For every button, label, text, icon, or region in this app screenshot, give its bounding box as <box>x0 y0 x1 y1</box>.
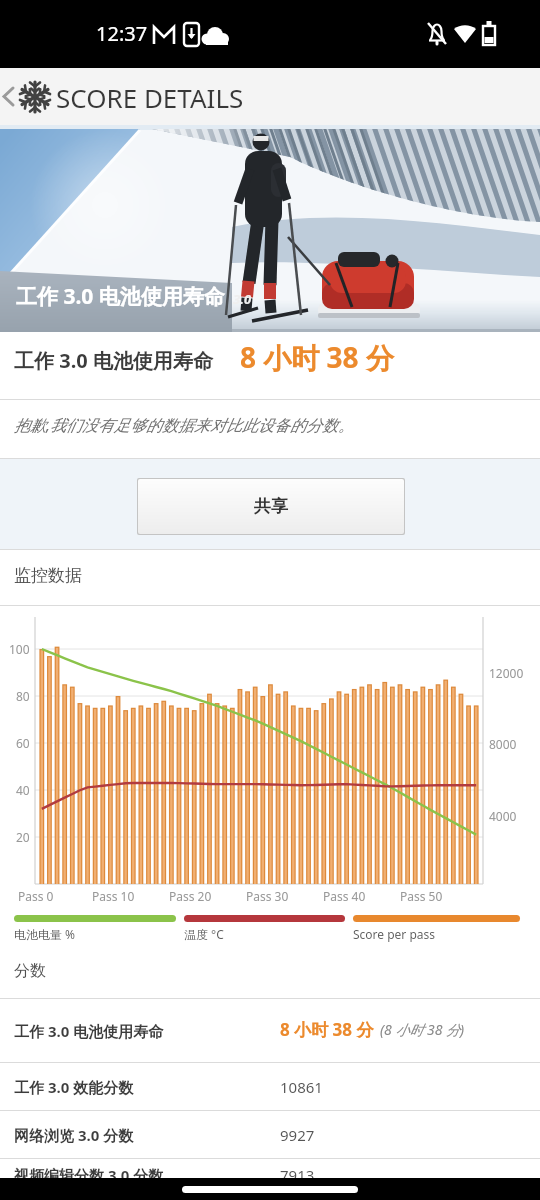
staticText: 100 <box>9 641 30 657</box>
staticText: Pass 50 <box>400 888 443 904</box>
button[interactable]: 视频编辑分数 3.0 分数 <box>0 1159 540 1200</box>
staticText: 监控数据 <box>14 565 82 586</box>
staticText: SCORE DETAILS <box>56 80 244 115</box>
staticText: 抱歉,我们没有足够的数据来对比此设备的分数。 <box>14 414 355 436</box>
button[interactable]: 网络浏览 3.0 分数 <box>0 1111 540 1158</box>
staticText: 8 小时 38 分 <box>240 338 394 376</box>
button[interactable]: 工作 3.0 电池使用寿命 <box>0 332 540 400</box>
staticText: (8 小时 38 分) <box>380 1020 465 1039</box>
staticText: 工作 3.0 效能分数 <box>14 1077 134 1097</box>
staticText: 8 小时 38 分 <box>280 1018 374 1041</box>
staticText: Pass 30 <box>246 888 289 904</box>
staticText: 网络浏览 3.0 分数 <box>14 1125 134 1145</box>
staticText: 8000 <box>489 736 517 752</box>
staticText: 80 <box>16 688 30 704</box>
staticText: 20 <box>16 829 30 845</box>
staticText: 工作 3.0 电池使用寿命 <box>14 347 213 374</box>
staticText: 40 <box>16 782 30 798</box>
button[interactable]: SCORE DETAILS <box>0 68 540 125</box>
button[interactable]: 共享 <box>138 479 404 534</box>
staticText: 工作 3.0 电池使用寿命 <box>14 1021 164 1041</box>
staticText: 12:37 <box>96 20 148 47</box>
staticText: 电池电量 % <box>14 926 76 942</box>
staticText: 4000 <box>489 808 517 824</box>
staticText: 共享 <box>254 496 288 517</box>
staticText: 10861 <box>280 1077 323 1097</box>
button[interactable]: 工作 3.0 电池使用寿命 <box>0 999 540 1062</box>
staticText: Pass 0 <box>18 888 54 904</box>
button[interactable]: 工作 3.0 效能分数 <box>0 1063 540 1110</box>
staticText: 12000 <box>489 665 524 681</box>
staticText: Pass 20 <box>169 888 212 904</box>
staticText: 工作 3.0 电池使用寿命 <box>16 282 225 311</box>
staticText: 温度 °C <box>184 926 224 942</box>
staticText: Pass 40 <box>323 888 366 904</box>
staticText: 视频编辑分数 3.0 分数 <box>14 1165 164 1185</box>
staticText: 9927 <box>280 1125 315 1145</box>
staticText: Pass 10 <box>92 888 135 904</box>
staticText: Score per pass <box>353 926 436 942</box>
staticText: 3.0 <box>233 290 252 308</box>
staticText: 分数 <box>14 961 46 981</box>
staticText: 7913 <box>280 1165 315 1185</box>
staticText: 60 <box>16 735 30 751</box>
